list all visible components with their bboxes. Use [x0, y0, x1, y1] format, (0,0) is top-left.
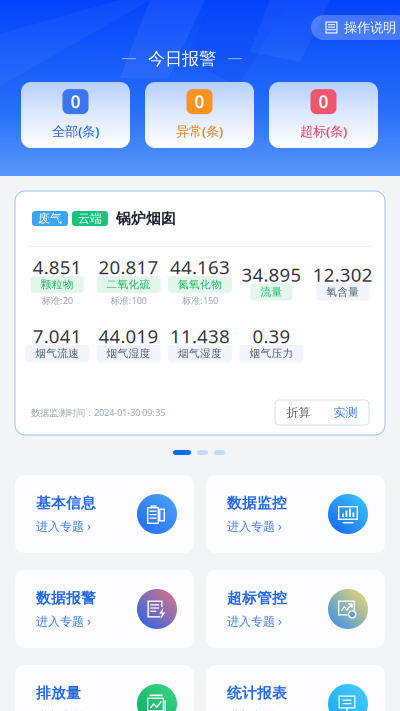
staticText: 数据监测时间：2024-01-30 09:35	[31, 406, 165, 419]
staticText: 云端	[78, 211, 102, 226]
button[interactable]: 排放量	[15, 665, 194, 711]
staticText: 烟气压力	[249, 347, 293, 360]
button[interactable]: 超标管控	[206, 570, 385, 648]
staticText: 折算	[286, 405, 310, 420]
staticText: 基本信息	[36, 494, 96, 512]
staticText: 0	[318, 90, 328, 113]
staticText: 44.163	[170, 255, 230, 279]
staticText: 标准:150	[182, 294, 218, 307]
staticText: 进入专题 ›	[227, 708, 282, 711]
button[interactable]: 数据报警	[15, 570, 194, 648]
staticText: 34.895	[241, 262, 301, 287]
staticText: 废气	[38, 211, 62, 226]
staticText: 操作说明	[344, 19, 396, 36]
staticText: 标准:20	[42, 294, 73, 307]
staticText: 超标管控	[227, 589, 287, 607]
staticText: 12.302	[313, 262, 373, 287]
button[interactable]: 0	[145, 82, 254, 148]
staticText: 进入专题 ›	[227, 518, 282, 534]
staticText: 实测	[333, 405, 357, 420]
staticText: 标准:100	[111, 294, 147, 307]
button[interactable]: 实测	[322, 400, 369, 425]
staticText: 流量	[260, 285, 282, 298]
staticText: 异常(条)	[176, 122, 223, 140]
staticText: 7.041	[33, 324, 82, 348]
staticText: 0	[70, 90, 80, 113]
staticText: 进入专题 ›	[36, 708, 91, 711]
button[interactable]: 数据监控	[206, 475, 385, 553]
staticText: 今日报警	[148, 48, 216, 69]
staticText: 烟气湿度	[107, 347, 151, 360]
staticText: 颗粒物	[41, 278, 74, 291]
staticText: 44.019	[99, 324, 159, 348]
staticText: 超标(条)	[300, 122, 347, 140]
staticText: 进入专题 ›	[36, 518, 91, 534]
button[interactable]: 基本信息	[15, 475, 194, 553]
staticText: 进入专题 ›	[36, 613, 91, 629]
staticText: 全部(条)	[52, 122, 99, 140]
staticText: 排放量	[36, 684, 81, 702]
staticText: 烟气湿度	[178, 347, 222, 360]
button[interactable]: 0	[269, 82, 378, 148]
staticText: 20.817	[99, 255, 159, 279]
button[interactable]: 操作说明	[311, 15, 400, 40]
staticText: 氧含量	[326, 285, 359, 298]
staticText: 4.851	[33, 255, 82, 279]
staticText: 氮氧化物	[178, 278, 222, 291]
staticText: 锅炉烟囱	[116, 209, 176, 227]
button[interactable]: 折算	[275, 400, 322, 425]
staticText: 数据监控	[227, 494, 287, 512]
staticText: 11.438	[170, 324, 230, 348]
button[interactable]: 0	[21, 82, 130, 148]
staticText: 烟气流速	[35, 347, 79, 360]
staticText: 0.39	[252, 324, 290, 348]
staticText: 数据报警	[36, 589, 96, 607]
button[interactable]: 统计报表	[206, 665, 385, 711]
staticText: 0	[194, 90, 204, 113]
staticText: 二氧化硫	[107, 278, 151, 291]
staticText: 统计报表	[227, 684, 287, 702]
staticText: 进入专题 ›	[227, 613, 282, 629]
